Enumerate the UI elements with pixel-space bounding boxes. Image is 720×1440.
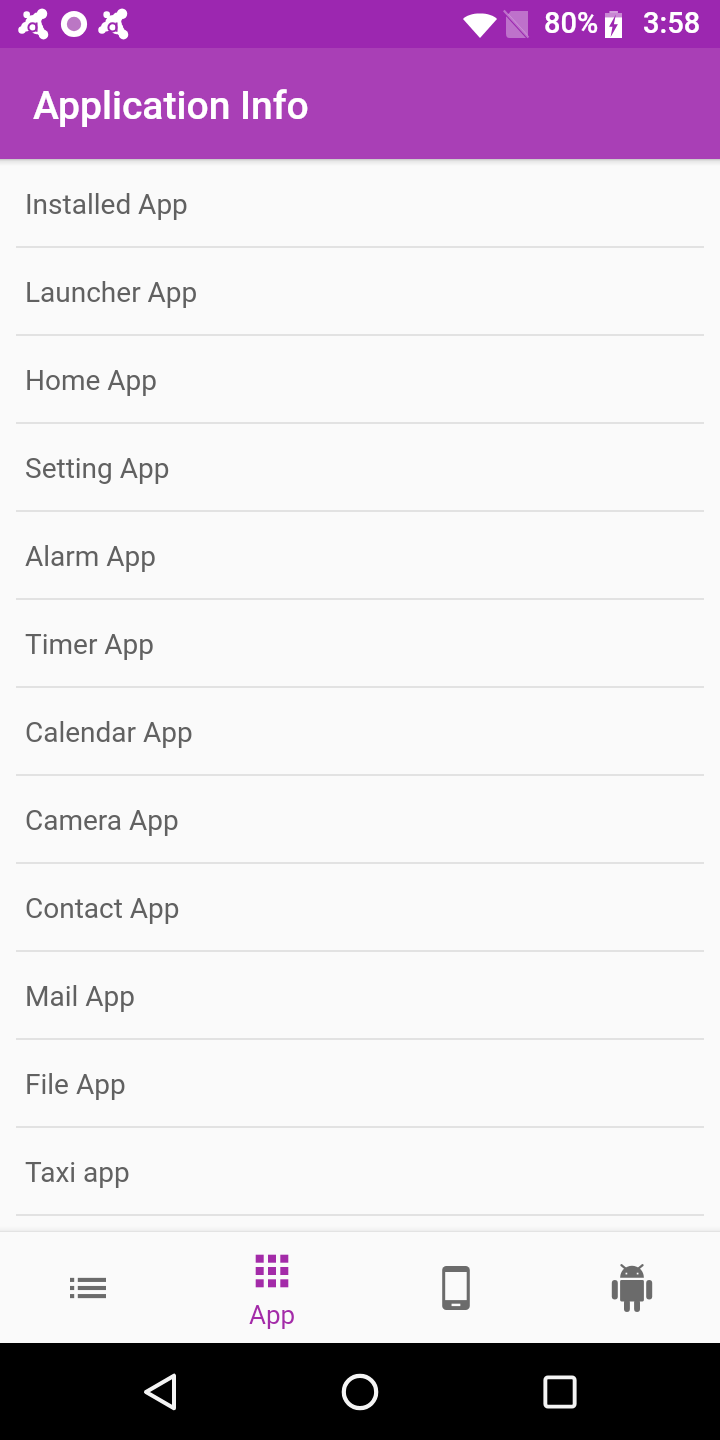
button[interactable]: Back bbox=[120, 1352, 200, 1432]
staticText: File App bbox=[25, 1068, 126, 1101]
button[interactable]: Camera App bbox=[0, 775, 720, 863]
button[interactable]: Taxi app bbox=[0, 1127, 720, 1215]
button[interactable]: Recent list bbox=[0, 1232, 176, 1343]
staticText: App bbox=[249, 1300, 296, 1330]
button[interactable]: Android bbox=[544, 1232, 720, 1343]
button[interactable]: Device bbox=[368, 1232, 544, 1343]
button[interactable]: Contact App bbox=[0, 863, 720, 951]
button[interactable]: Launcher App bbox=[0, 247, 720, 335]
button[interactable]: Mail App bbox=[0, 951, 720, 1039]
staticText: Launcher App bbox=[25, 276, 198, 309]
button[interactable]: Home App bbox=[0, 335, 720, 423]
staticText: Application Info bbox=[33, 83, 309, 129]
staticText: Camera App bbox=[25, 804, 179, 837]
staticText: 3:58 bbox=[643, 6, 701, 40]
button[interactable]: Setting App bbox=[0, 423, 720, 511]
button[interactable]: Calendar App bbox=[0, 687, 720, 775]
staticText: Mail App bbox=[25, 980, 135, 1013]
staticText: Setting App bbox=[25, 452, 170, 485]
staticText: Alarm App bbox=[25, 540, 157, 573]
button[interactable]: Home bbox=[320, 1352, 400, 1432]
staticText: Contact App bbox=[25, 892, 180, 925]
button[interactable]: App bbox=[176, 1232, 368, 1343]
button[interactable]: Timer App bbox=[0, 599, 720, 687]
button[interactable]: Alarm App bbox=[0, 511, 720, 599]
staticText: Installed App bbox=[25, 188, 188, 221]
button[interactable]: Recents bbox=[520, 1352, 600, 1432]
button[interactable]: Installed App bbox=[0, 159, 720, 247]
staticText: Timer App bbox=[25, 628, 155, 661]
staticText: Calendar App bbox=[25, 716, 193, 749]
staticText: Taxi app bbox=[25, 1156, 130, 1189]
staticText: 80% bbox=[544, 6, 599, 40]
staticText: Home App bbox=[25, 364, 158, 397]
button[interactable]: File App bbox=[0, 1039, 720, 1127]
